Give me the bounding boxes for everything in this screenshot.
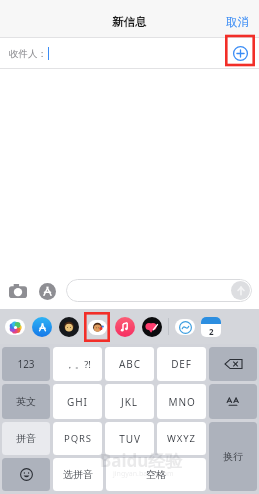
button[interactable]: Calendar — [201, 317, 221, 337]
button[interactable]: WXYZ — [157, 422, 206, 455]
button[interactable]: App — [175, 319, 195, 335]
button[interactable]: Send — [231, 281, 250, 300]
staticText: JKL — [121, 395, 138, 409]
button[interactable]: 拼音 — [2, 422, 50, 455]
button[interactable]: Send — [66, 279, 252, 302]
staticText: TUV — [119, 432, 141, 446]
button[interactable]: Shift — [209, 384, 257, 419]
button[interactable]: ABC — [105, 347, 154, 381]
button[interactable]: Memoji — [59, 317, 79, 337]
staticText: Baidu经验 — [100, 449, 183, 472]
button[interactable]: App — [5, 319, 25, 335]
staticText: 2 — [209, 326, 214, 337]
staticText: jingyan.baidu.com — [113, 469, 174, 479]
staticText: 新信息 — [112, 15, 147, 29]
button[interactable]: App Store — [32, 317, 52, 337]
button[interactable]: 换行 — [209, 422, 257, 491]
staticText: 英文 — [16, 395, 36, 408]
staticText: 选拼音 — [63, 468, 93, 481]
button[interactable]: App Store — [36, 280, 58, 302]
staticText: 收件人： — [9, 48, 47, 60]
button[interactable]: 英文 — [2, 384, 50, 419]
button[interactable]: Backspace — [209, 347, 257, 381]
staticText: ABC — [119, 357, 141, 371]
button[interactable]: Memoji stickers — [84, 312, 110, 342]
button[interactable]: Digital Touch — [142, 317, 162, 337]
staticText: WXYZ — [167, 432, 196, 445]
staticText: MNO — [168, 395, 196, 409]
button[interactable]: TUV — [105, 422, 154, 455]
button[interactable]: Camera — [7, 280, 29, 302]
staticText: 取消 — [226, 15, 249, 29]
button[interactable]: Music — [115, 317, 135, 337]
staticText: 拼音 — [16, 432, 36, 445]
button[interactable]: 空格 — [106, 458, 206, 491]
button[interactable]: Add contact — [225, 39, 255, 67]
staticText: 空格 — [146, 468, 166, 481]
button[interactable]: PQRS — [53, 422, 102, 455]
button[interactable]: DEF — [157, 347, 206, 381]
button[interactable]: 123 — [2, 347, 50, 381]
staticText: PQRS — [64, 432, 92, 445]
button[interactable]: 选拼音 — [53, 458, 103, 491]
staticText: DEF — [171, 357, 192, 371]
button[interactable]: 取消 — [216, 11, 259, 33]
button[interactable]: GHI — [53, 384, 102, 419]
staticText: 换行 — [223, 450, 243, 463]
button[interactable]: JKL — [105, 384, 154, 419]
button[interactable]: MNO — [157, 384, 206, 419]
staticText: 123 — [17, 357, 35, 371]
staticText: GHI — [67, 395, 88, 409]
button[interactable]: ，。?! — [53, 347, 102, 381]
button[interactable]: Emoji — [2, 458, 50, 491]
staticText: ，。?! — [65, 358, 91, 371]
